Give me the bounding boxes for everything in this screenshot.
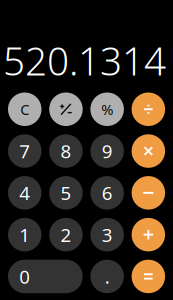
staticText: 520.1314 xyxy=(3,35,166,86)
staticText: . xyxy=(105,264,110,289)
staticText: C xyxy=(20,99,29,119)
button[interactable]: 2 xyxy=(49,218,83,251)
button[interactable]: 4 xyxy=(8,176,41,210)
button[interactable]: 0 xyxy=(8,260,83,293)
button[interactable]: Multiply xyxy=(132,134,165,168)
staticText: 0 xyxy=(19,264,30,289)
button[interactable]: 5 xyxy=(49,176,83,210)
button[interactable]: Plus xyxy=(132,218,165,251)
staticText: 5 xyxy=(60,180,71,205)
button[interactable]: 9 xyxy=(90,134,124,168)
button[interactable]: C xyxy=(8,92,41,126)
staticText: 8 xyxy=(60,139,71,163)
button[interactable]: 1 xyxy=(8,218,41,251)
button[interactable]: . xyxy=(90,260,124,293)
staticText: 7 xyxy=(19,139,30,163)
button[interactable]: 6 xyxy=(90,176,124,210)
button[interactable]: Minus xyxy=(132,176,165,210)
staticText: 4 xyxy=(19,180,30,205)
button[interactable]: Plus Minus xyxy=(49,92,83,126)
button[interactable]: Divide xyxy=(132,92,165,126)
staticText: 6 xyxy=(102,180,113,205)
staticText: 2 xyxy=(60,222,71,247)
button[interactable]: Equals xyxy=(132,260,165,293)
button[interactable]: 3 xyxy=(90,218,124,251)
staticText: 9 xyxy=(102,139,113,163)
button[interactable]: 8 xyxy=(49,134,83,168)
staticText: 3 xyxy=(102,222,113,247)
staticText: % xyxy=(101,99,113,119)
button[interactable]: % xyxy=(90,92,124,126)
staticText: 1 xyxy=(19,222,30,247)
button[interactable]: 7 xyxy=(8,134,41,168)
